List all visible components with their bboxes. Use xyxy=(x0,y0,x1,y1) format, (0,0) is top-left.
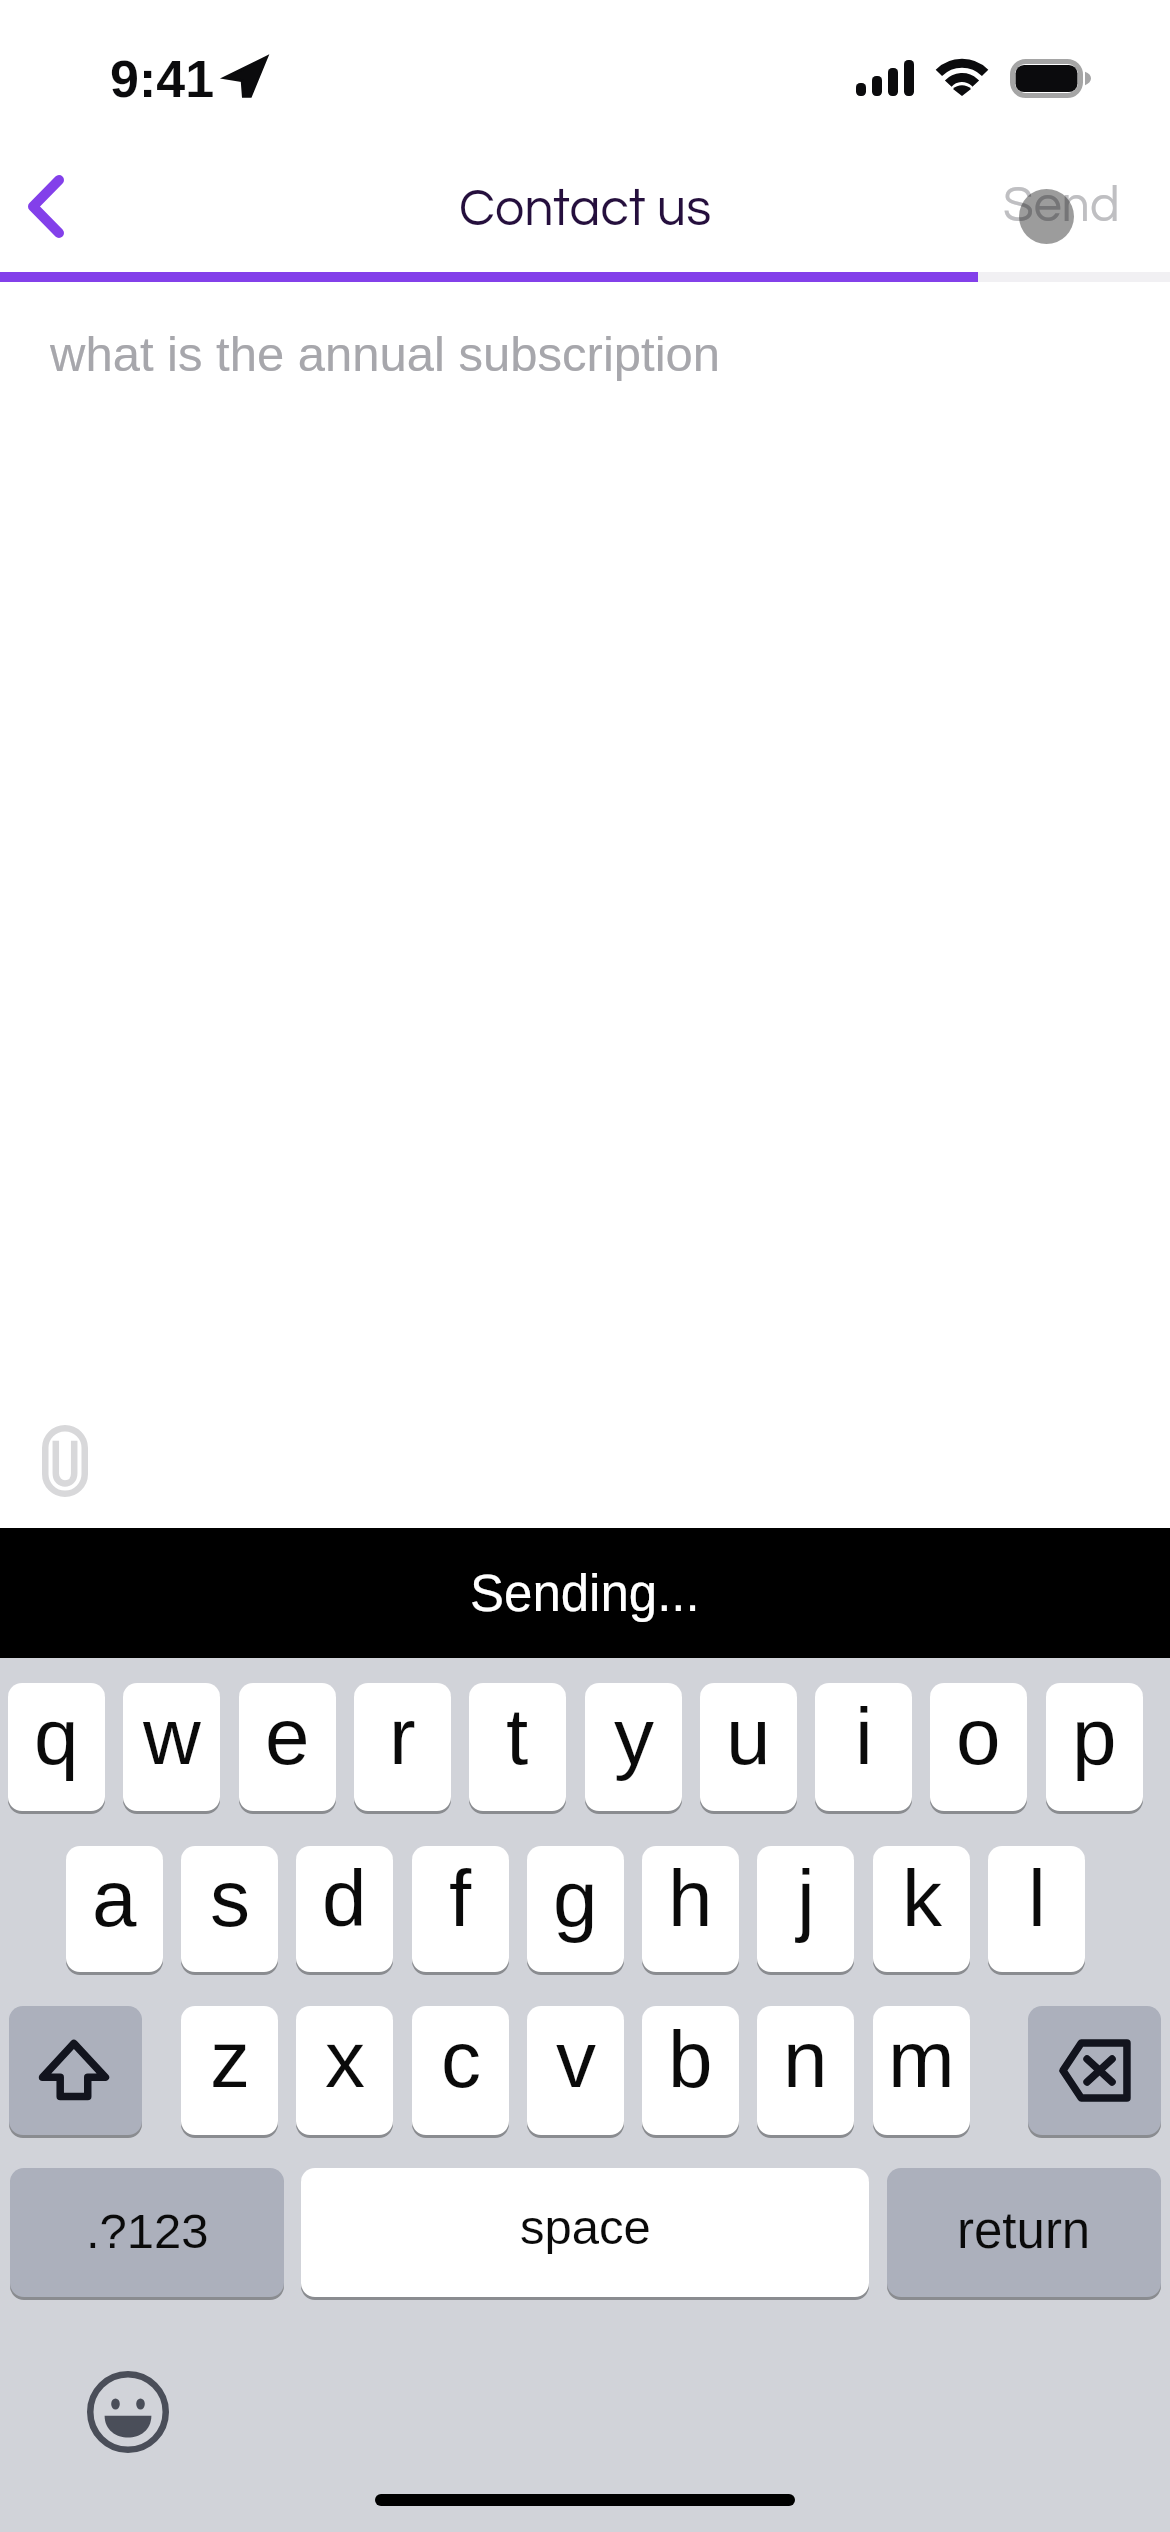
button[interactable]: x xyxy=(296,2006,393,2135)
button[interactable]: f xyxy=(412,1846,509,1972)
button[interactable]: Attach file xyxy=(20,1416,110,1506)
staticText: z xyxy=(210,2015,250,2104)
staticText: b xyxy=(668,2015,713,2104)
staticText: 9:41 xyxy=(110,50,215,108)
staticText: c xyxy=(441,2015,481,2104)
button[interactable]: Backspace xyxy=(1028,2006,1161,2135)
staticText: p xyxy=(1072,1692,1117,1781)
button[interactable]: y xyxy=(585,1683,682,1811)
button[interactable]: b xyxy=(642,2006,739,2135)
staticText: y xyxy=(614,1692,654,1781)
staticText: Contact us xyxy=(459,182,712,236)
button[interactable]: v xyxy=(527,2006,624,2135)
staticText: s xyxy=(210,1854,250,1943)
button[interactable]: k xyxy=(873,1846,970,1972)
staticText: r xyxy=(389,1692,416,1781)
staticText: g xyxy=(553,1854,598,1943)
button[interactable]: l xyxy=(988,1846,1085,1972)
staticText: Sending... xyxy=(470,1565,700,1622)
staticText: what is the annual subscription xyxy=(50,327,721,382)
button[interactable]: return xyxy=(887,2168,1161,2297)
button[interactable]: n xyxy=(757,2006,854,2135)
staticText: n xyxy=(783,2015,828,2104)
button[interactable]: p xyxy=(1046,1683,1143,1811)
staticText: q xyxy=(34,1692,79,1781)
button[interactable]: e xyxy=(239,1683,336,1811)
staticText: h xyxy=(668,1854,713,1943)
staticText: a xyxy=(92,1854,137,1943)
button[interactable]: Back xyxy=(0,144,91,268)
staticText: m xyxy=(888,2015,955,2104)
button[interactable]: o xyxy=(930,1683,1027,1811)
button[interactable]: w xyxy=(123,1683,220,1811)
button[interactable]: d xyxy=(296,1846,393,1972)
staticText: i xyxy=(855,1692,873,1781)
staticText: d xyxy=(322,1854,367,1943)
staticText: j xyxy=(797,1854,815,1943)
staticText: return xyxy=(957,2202,1091,2259)
button[interactable]: .?123 xyxy=(10,2168,284,2297)
staticText: k xyxy=(902,1854,942,1943)
staticText: .?123 xyxy=(86,2204,209,2259)
button[interactable]: Emoji xyxy=(78,2362,178,2462)
button[interactable]: h xyxy=(642,1846,739,1972)
button[interactable]: q xyxy=(8,1683,105,1811)
staticText: v xyxy=(556,2015,596,2104)
staticText: space xyxy=(520,2200,651,2255)
button[interactable]: Shift xyxy=(9,2006,142,2135)
button[interactable]: t xyxy=(469,1683,566,1811)
staticText: u xyxy=(726,1692,771,1781)
button[interactable]: u xyxy=(700,1683,797,1811)
staticText: t xyxy=(506,1692,529,1781)
button[interactable]: c xyxy=(412,2006,509,2135)
staticText: x xyxy=(325,2015,365,2104)
button[interactable]: s xyxy=(181,1846,278,1972)
button[interactable]: Send xyxy=(952,140,1170,272)
button[interactable]: a xyxy=(66,1846,163,1972)
button[interactable]: i xyxy=(815,1683,912,1811)
staticText: Send xyxy=(1003,180,1120,232)
staticText: w xyxy=(143,1692,201,1781)
staticText: l xyxy=(1028,1854,1046,1943)
button[interactable]: z xyxy=(181,2006,278,2135)
button[interactable]: space xyxy=(301,2168,869,2297)
staticText: e xyxy=(265,1692,310,1781)
button[interactable]: g xyxy=(527,1846,624,1972)
button[interactable]: j xyxy=(757,1846,854,1972)
button[interactable]: m xyxy=(873,2006,970,2135)
staticText: o xyxy=(956,1692,1001,1781)
staticText: f xyxy=(449,1854,472,1943)
button[interactable]: r xyxy=(354,1683,451,1811)
